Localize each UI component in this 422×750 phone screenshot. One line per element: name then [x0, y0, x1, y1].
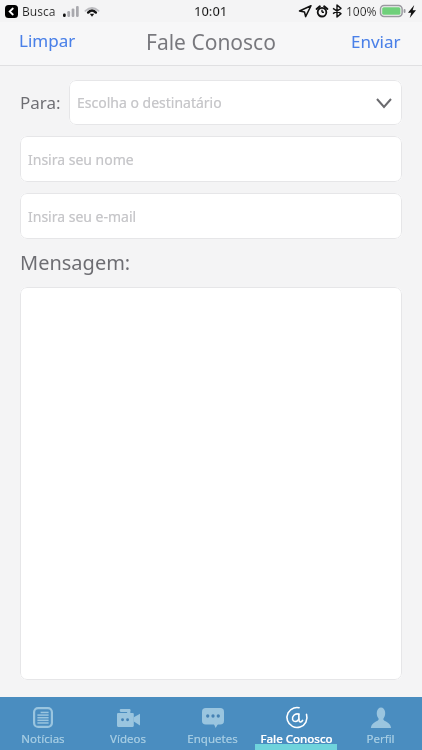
- staticText: Para:: [20, 91, 61, 114]
- staticText: Insira seu nome: [28, 150, 134, 169]
- button[interactable]: Vídeos: [85, 697, 170, 750]
- button[interactable]: Limpar: [9, 23, 86, 58]
- staticText: Limpar: [19, 29, 76, 52]
- button[interactable]: Notícias: [0, 697, 85, 750]
- button[interactable]: Insira seu e-mail: [20, 193, 402, 239]
- staticText: Vídeos: [110, 731, 146, 747]
- button[interactable]: Perfil: [338, 697, 422, 750]
- staticText: Insira seu e-mail: [28, 207, 137, 226]
- staticText: Enquetes: [187, 731, 238, 747]
- staticText: Perfil: [366, 731, 395, 747]
- staticText: Fale Conosco: [260, 731, 333, 747]
- staticText: Fale Conosco: [146, 28, 276, 57]
- staticText: Enviar: [351, 30, 401, 53]
- other: Abrir seletor: [376, 98, 392, 108]
- button[interactable]: Fale Conosco: [254, 697, 338, 750]
- staticText: 100%: [346, 3, 377, 19]
- button[interactable]: Insira seu nome: [20, 136, 402, 182]
- button[interactable]: Enviar: [341, 24, 411, 59]
- staticText: Mensagem:: [20, 249, 131, 276]
- button[interactable]: Escolha o destinatário: [69, 80, 402, 125]
- button[interactable]: Enquetes: [170, 697, 254, 750]
- staticText: Notícias: [21, 731, 65, 747]
- staticText: 10:01: [194, 2, 228, 20]
- staticText: Escolha o destinatário: [77, 93, 222, 112]
- staticText: Busca: [22, 3, 56, 19]
